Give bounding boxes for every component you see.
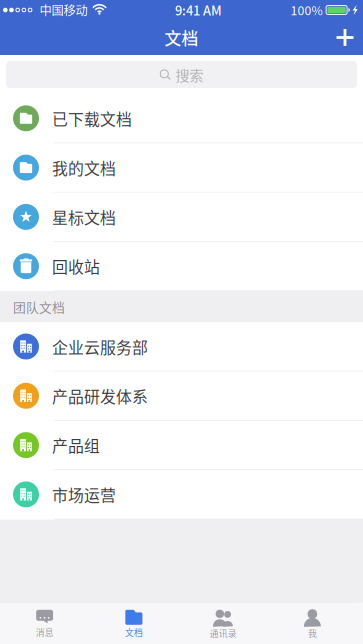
staticText: 文档 <box>164 25 198 50</box>
staticText: 9:41 AM <box>175 1 222 19</box>
button[interactable]: 产品研发体系 <box>0 371 363 421</box>
button[interactable]: 通讯录 <box>178 602 268 644</box>
button[interactable]: 我 <box>268 602 357 644</box>
button[interactable]: 产品组 <box>0 421 363 470</box>
staticText: 已下载文档 <box>52 107 132 130</box>
button[interactable]: 市场运营 <box>0 470 363 519</box>
staticText: 市场运营 <box>52 483 116 506</box>
staticText: 团队文档 <box>13 297 65 316</box>
button[interactable]: 新建 <box>327 20 363 55</box>
staticText: 文档 <box>125 626 143 639</box>
button[interactable]: 已下载文档 <box>0 94 363 143</box>
staticText: 消息 <box>36 626 54 639</box>
staticText: 我 <box>308 627 317 639</box>
button[interactable]: 文档 <box>89 602 178 644</box>
staticText: 企业云服务部 <box>52 335 148 358</box>
staticText: 中国移动 <box>39 1 87 19</box>
staticText: 产品研发体系 <box>52 384 148 407</box>
staticText: 回收站 <box>52 255 100 278</box>
button[interactable]: 我的文档 <box>0 143 363 193</box>
staticText: 我的文档 <box>52 156 116 179</box>
staticText: 100% <box>291 1 323 19</box>
staticText: 搜索 <box>175 64 203 85</box>
button[interactable]: 消息 <box>0 602 89 644</box>
button[interactable]: 星标文档 <box>0 193 363 242</box>
staticText: 产品组 <box>52 434 100 457</box>
button[interactable]: 搜索 <box>0 61 363 88</box>
button[interactable]: 企业云服务部 <box>0 322 363 371</box>
staticText: 通讯录 <box>210 627 237 639</box>
button[interactable]: 回收站 <box>0 242 363 291</box>
staticText: 星标文档 <box>52 205 116 228</box>
